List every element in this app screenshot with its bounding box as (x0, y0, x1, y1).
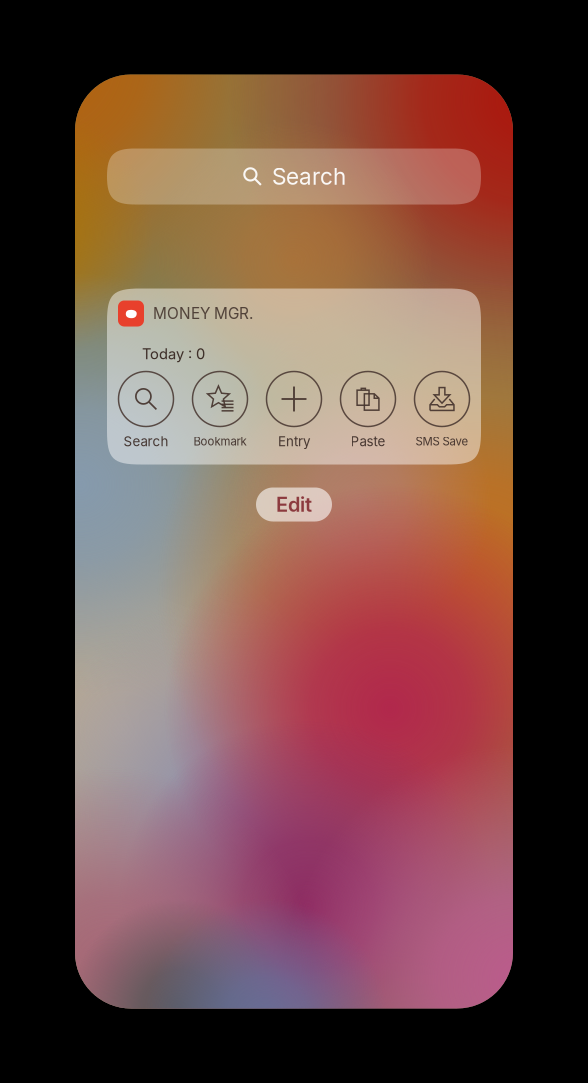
staticText: Today : 0 (142, 345, 205, 363)
button[interactable]: Bookmark (183, 372, 257, 454)
staticText: Entry (278, 433, 310, 449)
button[interactable]: Paste (331, 372, 405, 454)
staticText: SMS Save (415, 435, 468, 448)
staticText: Bookmark (193, 435, 246, 448)
staticText: MONEY MGR. (153, 304, 253, 323)
button[interactable]: Entry (257, 372, 331, 454)
button[interactable]: Edit (256, 487, 332, 521)
staticText: Paste (350, 433, 385, 449)
staticText: Edit (276, 492, 312, 517)
button[interactable]: Search (107, 148, 481, 204)
staticText: Search (272, 163, 346, 190)
button[interactable]: Search (109, 372, 183, 454)
staticText: Search (123, 433, 168, 449)
button[interactable]: SMS Save (405, 372, 479, 454)
